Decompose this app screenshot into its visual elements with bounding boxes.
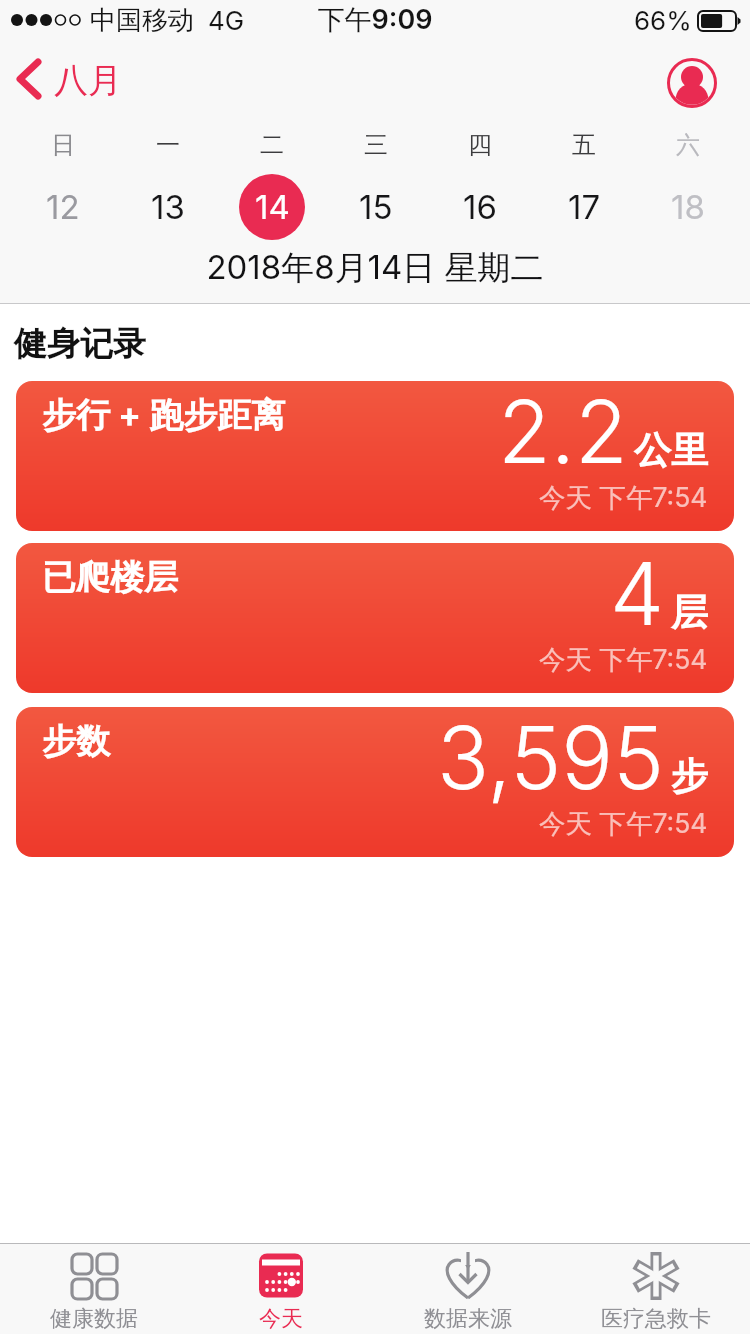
staticText: 今天 下午7:54 <box>539 643 708 677</box>
button[interactable]: 步数 <box>16 707 734 857</box>
button[interactable]: 步行 + 跑步距离 <box>16 381 734 531</box>
staticText: 4G <box>208 5 245 36</box>
staticText: 16 <box>463 187 497 227</box>
staticText: 12 <box>46 187 80 227</box>
staticText: 公里 <box>634 427 708 474</box>
button[interactable]: 14 <box>220 174 324 240</box>
staticText: 18 <box>671 187 705 227</box>
staticText: 今天 下午7:54 <box>539 481 708 515</box>
staticText: 医疗急救卡 <box>601 1305 711 1333</box>
staticText: 数据来源 <box>424 1305 512 1333</box>
button[interactable]: 16 <box>428 174 532 240</box>
staticText: 八月 <box>54 59 122 102</box>
staticText: 15 <box>359 187 393 227</box>
button[interactable]: 已爬楼层 <box>16 543 734 693</box>
button[interactable]: 数据来源 <box>374 1244 562 1334</box>
staticText: 3,595 <box>437 707 665 810</box>
staticText: 步 <box>671 753 708 800</box>
staticText: 五 <box>572 130 596 160</box>
staticText: 一 <box>156 130 180 160</box>
staticText: 步行 + 跑步距离 <box>42 394 286 437</box>
staticText: 步数 <box>42 720 110 763</box>
staticText: 2.2 <box>498 381 628 484</box>
button[interactable]: 15 <box>324 174 428 240</box>
button[interactable]: 八月 <box>16 52 122 108</box>
staticText: 13 <box>151 187 185 227</box>
button[interactable]: 今天 <box>187 1244 374 1334</box>
staticText: 17 <box>568 187 601 227</box>
button[interactable]: 医疗急救卡 <box>562 1244 750 1334</box>
staticText: 今天 下午7:54 <box>539 807 708 841</box>
staticText: 中国移动 <box>90 4 194 37</box>
staticText: 层 <box>671 589 708 636</box>
button[interactable]: 17 <box>532 174 636 240</box>
staticText: 下午9:09 <box>0 3 750 37</box>
button[interactable]: 健康数据 <box>0 1244 187 1334</box>
staticText: 2018年8月14日 星期二 <box>0 247 750 289</box>
button[interactable]: 13 <box>115 174 220 240</box>
staticText: 4 <box>610 543 665 646</box>
staticText: 已爬楼层 <box>42 556 178 599</box>
staticText: 日 <box>51 130 75 160</box>
button[interactable]: 12 <box>10 174 115 240</box>
staticText: 14 <box>255 187 290 227</box>
staticText: 健康数据 <box>50 1305 138 1333</box>
staticText: 今天 <box>259 1305 303 1333</box>
staticText: 六 <box>676 130 700 160</box>
staticText: 三 <box>364 130 388 160</box>
staticText: 二 <box>260 130 284 160</box>
staticText: 66% <box>634 5 692 36</box>
staticText: 健身记录 <box>14 323 146 365</box>
staticText: 四 <box>468 130 492 160</box>
button[interactable]: 18 <box>636 174 740 240</box>
button[interactable] <box>666 57 718 109</box>
